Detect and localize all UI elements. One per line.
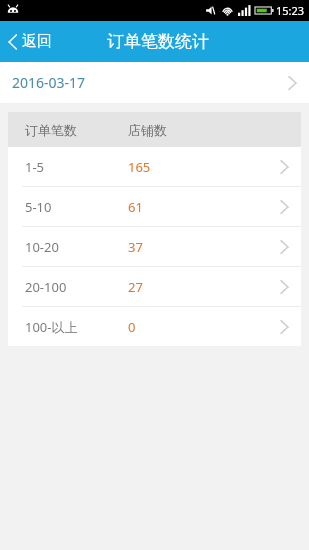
staticText: 店铺数	[128, 122, 167, 138]
button[interactable]: 100-以上	[8, 307, 301, 346]
staticText: 100-以上	[25, 318, 78, 336]
button[interactable]: 20-100	[8, 267, 301, 306]
staticText: 1-5	[25, 158, 45, 176]
staticText: 10-20	[25, 238, 59, 256]
button[interactable]: 返回	[0, 26, 62, 57]
staticText: 订单笔数	[25, 122, 77, 138]
staticText: 0	[128, 318, 136, 336]
other: Open details	[280, 319, 289, 335]
staticText: 15:23	[276, 3, 305, 18]
other: Open details	[288, 75, 297, 91]
other: Open details	[280, 199, 289, 215]
staticText: 5-10	[25, 198, 52, 216]
button[interactable]: 5-10	[8, 187, 301, 226]
other: Open details	[280, 159, 289, 175]
staticText: 订单笔数统计	[107, 31, 209, 52]
staticText: 165	[128, 158, 151, 176]
other: Open details	[280, 239, 289, 255]
staticText: 返回	[22, 32, 52, 51]
staticText: 27	[128, 278, 143, 296]
staticText: 2016-03-17	[12, 73, 86, 92]
other: Open details	[280, 279, 289, 295]
staticText: 61	[128, 198, 143, 216]
staticText: 37	[128, 238, 143, 256]
button[interactable]: 10-20	[8, 227, 301, 266]
button[interactable]: 1-5	[8, 147, 301, 186]
button[interactable]: 2016-03-17	[0, 62, 309, 103]
staticText: 20-100	[25, 278, 67, 296]
